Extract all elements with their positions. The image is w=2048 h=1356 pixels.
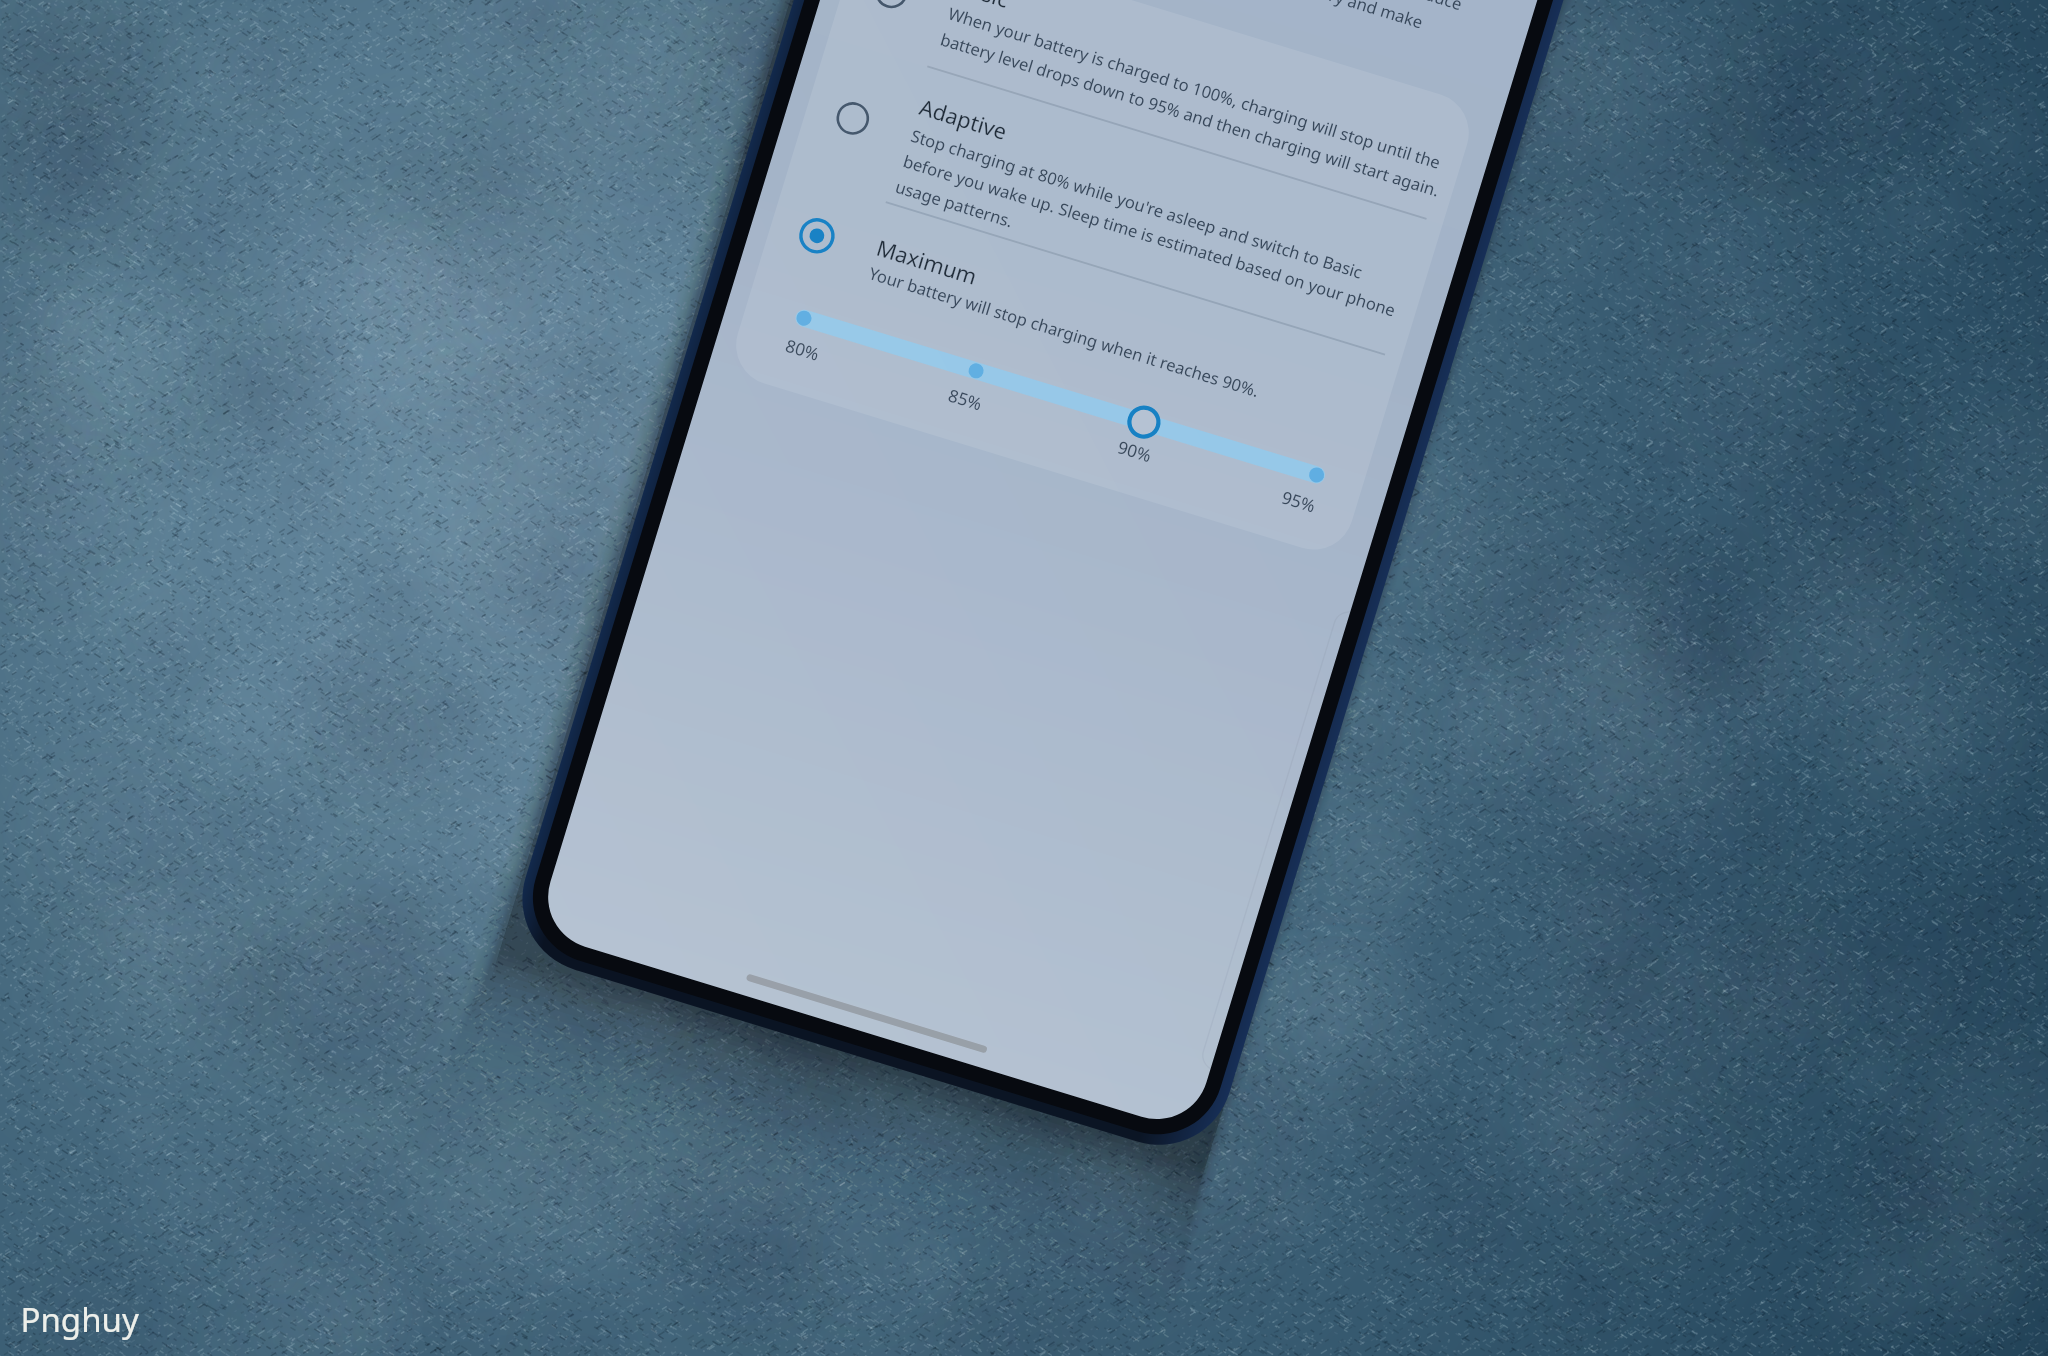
button[interactable]: Maximum charging option bbox=[755, 172, 1401, 464]
button[interactable]: Charge limit slider, 90 percent bbox=[747, 282, 1350, 553]
button[interactable]: Adaptive charging option bbox=[787, 36, 1443, 359]
button[interactable]: Basic charging option bbox=[829, 0, 1479, 224]
